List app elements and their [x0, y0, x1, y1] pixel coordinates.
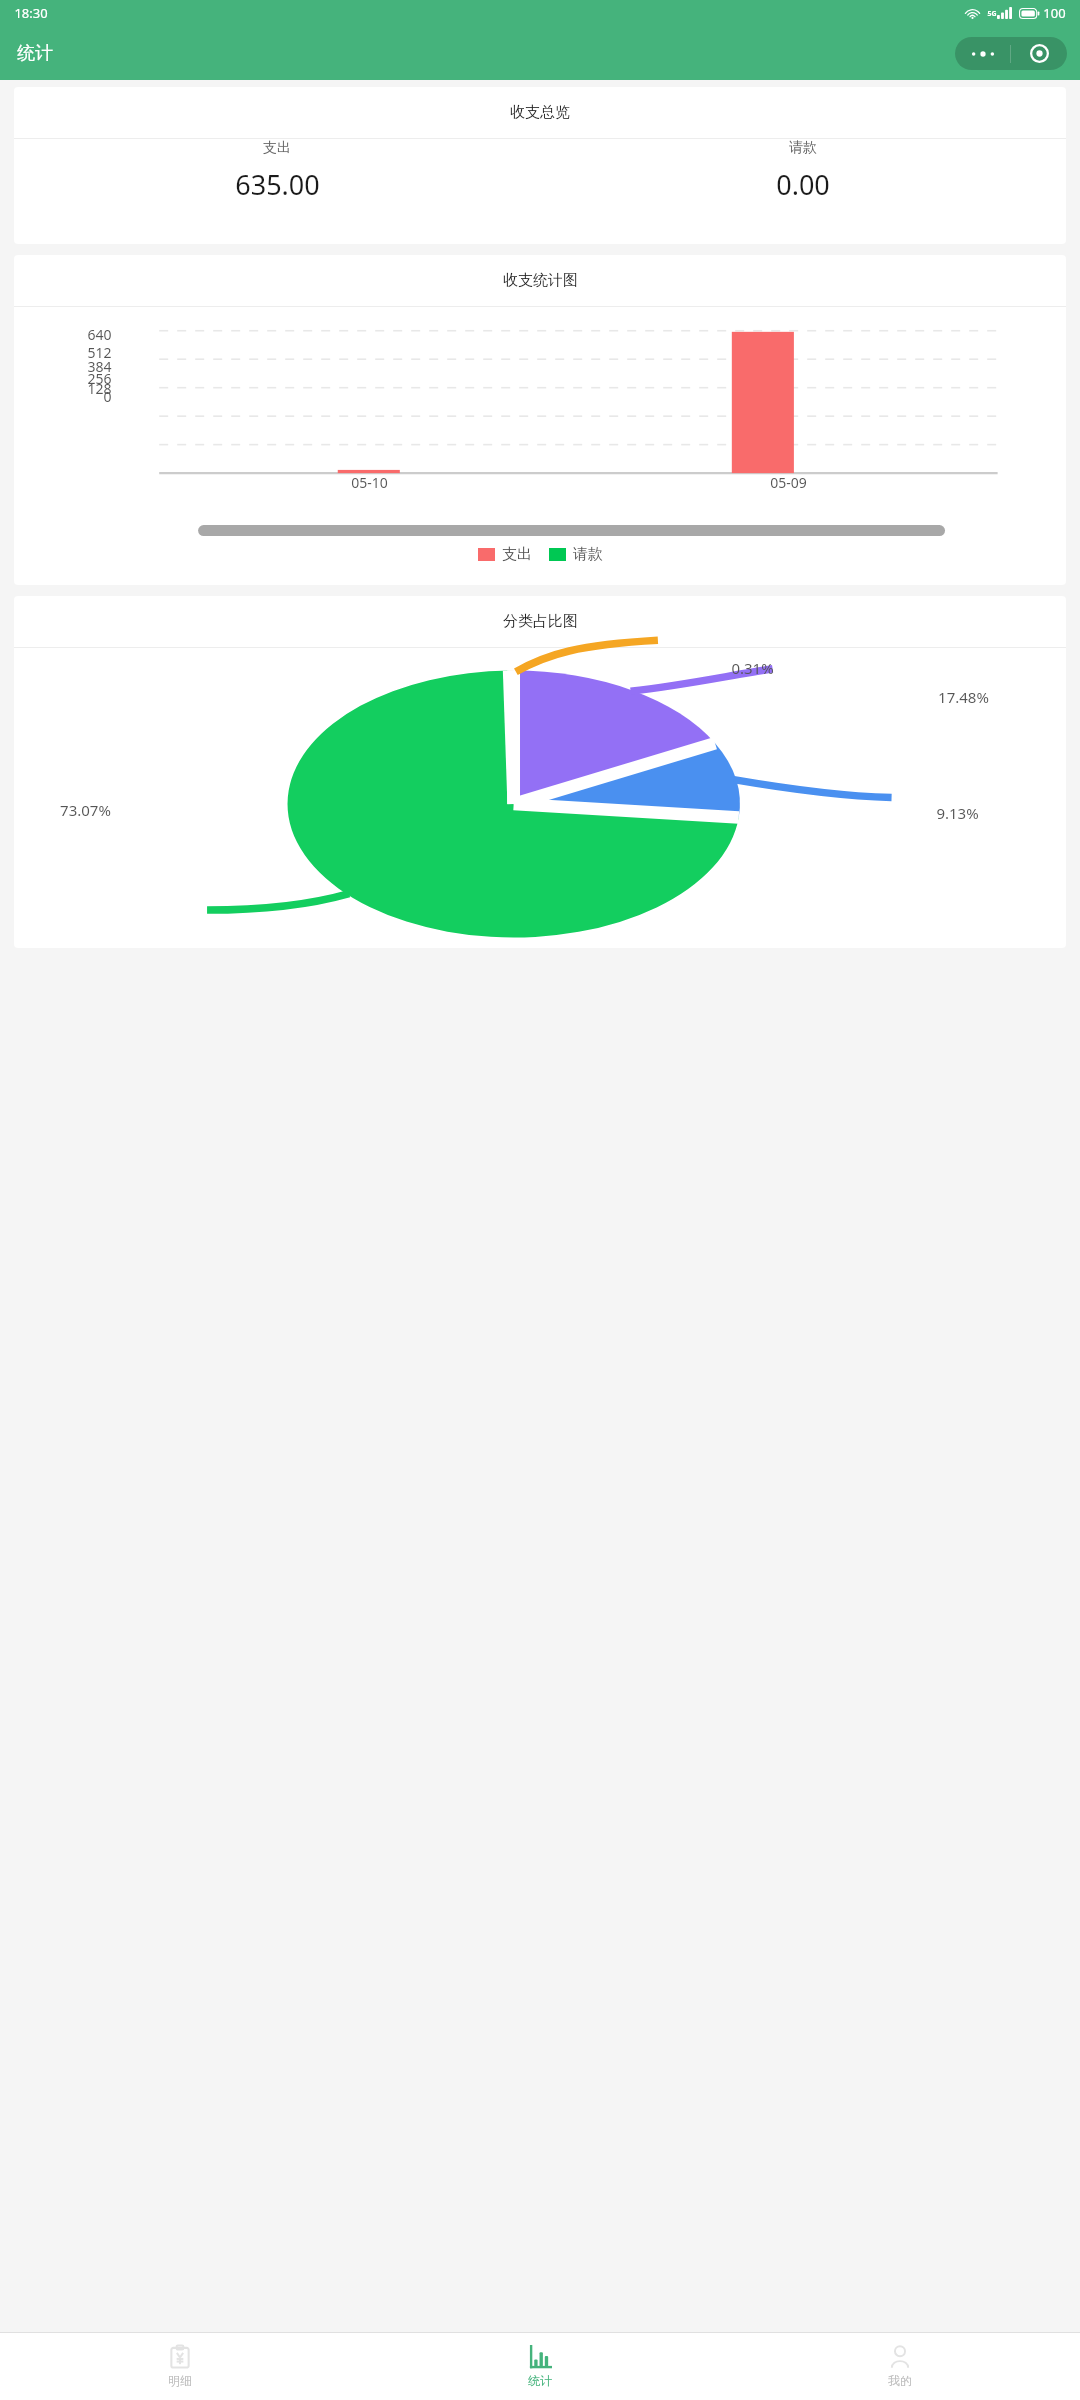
- staticText: 支出: [263, 139, 291, 157]
- staticText: 256: [87, 369, 112, 388]
- staticText: 我的: [888, 2373, 912, 2388]
- button[interactable]: 明细: [0, 2333, 360, 2400]
- staticText: 05-10: [351, 473, 388, 492]
- button[interactable]: 统计: [360, 2333, 720, 2400]
- staticText: 明细: [168, 2373, 192, 2388]
- staticText: 0: [103, 387, 112, 406]
- staticText: 128: [87, 379, 112, 398]
- staticText: 请款: [573, 545, 603, 564]
- staticText: 统计: [528, 2373, 552, 2388]
- staticText: 17.48%: [938, 687, 989, 707]
- button[interactable]: 收支总览: [14, 87, 1066, 244]
- staticText: 18:30: [14, 4, 48, 22]
- staticText: 5G: [987, 9, 997, 19]
- staticText: 635.00: [235, 166, 320, 203]
- staticText: 统计: [17, 42, 53, 65]
- button[interactable]: Menu and close: [955, 37, 1067, 70]
- staticText: 9.13%: [936, 803, 979, 823]
- staticText: 0.00: [776, 166, 830, 203]
- staticText: 512: [87, 343, 112, 362]
- staticText: 100: [1043, 4, 1066, 22]
- button[interactable]: 分类占比图: [14, 596, 1066, 948]
- staticText: 收支统计图: [503, 271, 578, 290]
- staticText: 分类占比图: [503, 612, 578, 631]
- button[interactable]: 收支统计图: [14, 255, 1066, 585]
- staticText: 05-09: [770, 473, 807, 492]
- staticText: 请款: [789, 139, 817, 157]
- staticText: 0.31%: [731, 658, 774, 678]
- button[interactable]: 我的: [720, 2333, 1080, 2400]
- staticText: 支出: [502, 545, 532, 564]
- staticText: 384: [87, 357, 112, 376]
- staticText: 73.07%: [60, 800, 111, 820]
- staticText: 640: [87, 325, 112, 344]
- staticText: 收支总览: [510, 103, 570, 122]
